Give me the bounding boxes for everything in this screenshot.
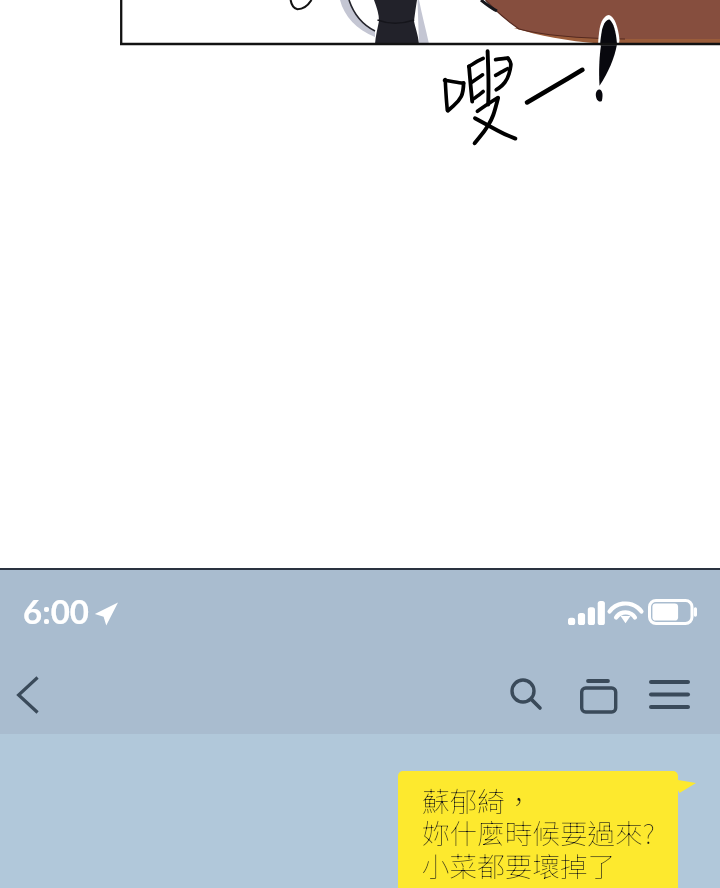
staticText: 蘇郁綺， 妳什麼時候要過來? 小菜都要壞掉了 (422, 780, 655, 885)
staticText: 6:00 (23, 591, 89, 631)
button[interactable]: 蘇郁綺， 妳什麼時候要過來? 小菜都要壞掉了 (398, 771, 678, 888)
button[interactable]: Tabs (570, 667, 626, 723)
button[interactable]: Search (499, 667, 555, 723)
button[interactable]: Back (0, 668, 54, 722)
button[interactable]: Menu (641, 666, 697, 722)
